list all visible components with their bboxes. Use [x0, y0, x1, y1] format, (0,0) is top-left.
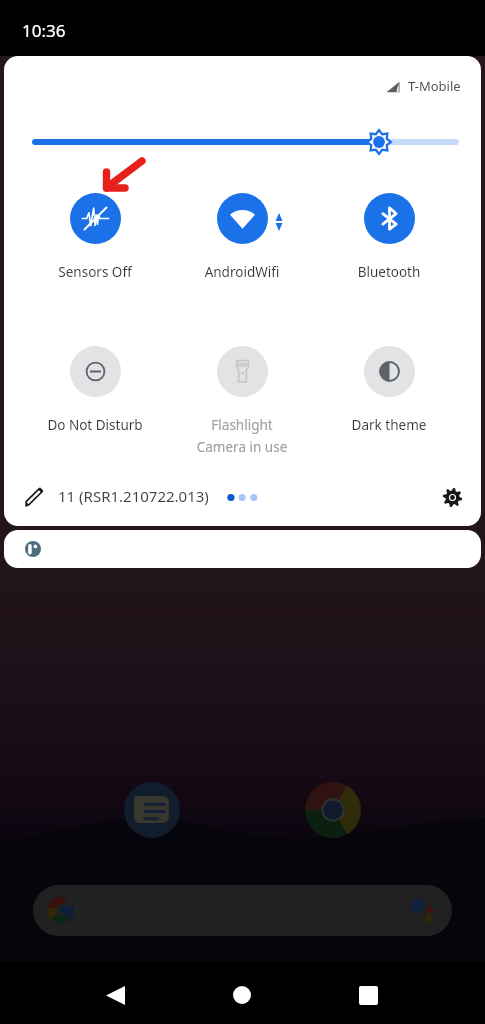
button[interactable]: AndroidWifi: [182, 193, 302, 281]
button[interactable]: Do Not Disturb: [35, 346, 155, 434]
button[interactable]: Sensors Off: [35, 193, 155, 281]
button[interactable]: Edit tiles: [16, 479, 52, 515]
staticText: 10:36: [22, 19, 66, 42]
staticText: Do Not Disturb: [35, 416, 155, 434]
button[interactable]: Recent apps: [344, 971, 392, 1019]
staticText: Dark theme: [329, 416, 449, 434]
button[interactable]: [4, 530, 481, 568]
button[interactable]: Dark theme: [329, 346, 449, 434]
button[interactable]: Bluetooth: [329, 193, 449, 281]
button[interactable]: Back: [91, 971, 139, 1019]
staticText: 11 (RSR1.210722.013): [58, 486, 209, 506]
staticText: T-Mobile: [408, 77, 461, 95]
button[interactable]: Home: [218, 971, 266, 1019]
button[interactable]: Settings: [434, 479, 470, 515]
staticText: Sensors Off: [35, 263, 155, 281]
staticText: Flashlight: [182, 416, 302, 434]
button[interactable]: Flashlight: [182, 346, 302, 456]
staticText: Bluetooth: [329, 263, 449, 281]
staticText: AndroidWifi: [182, 263, 302, 281]
staticText: Camera in use: [182, 438, 302, 456]
